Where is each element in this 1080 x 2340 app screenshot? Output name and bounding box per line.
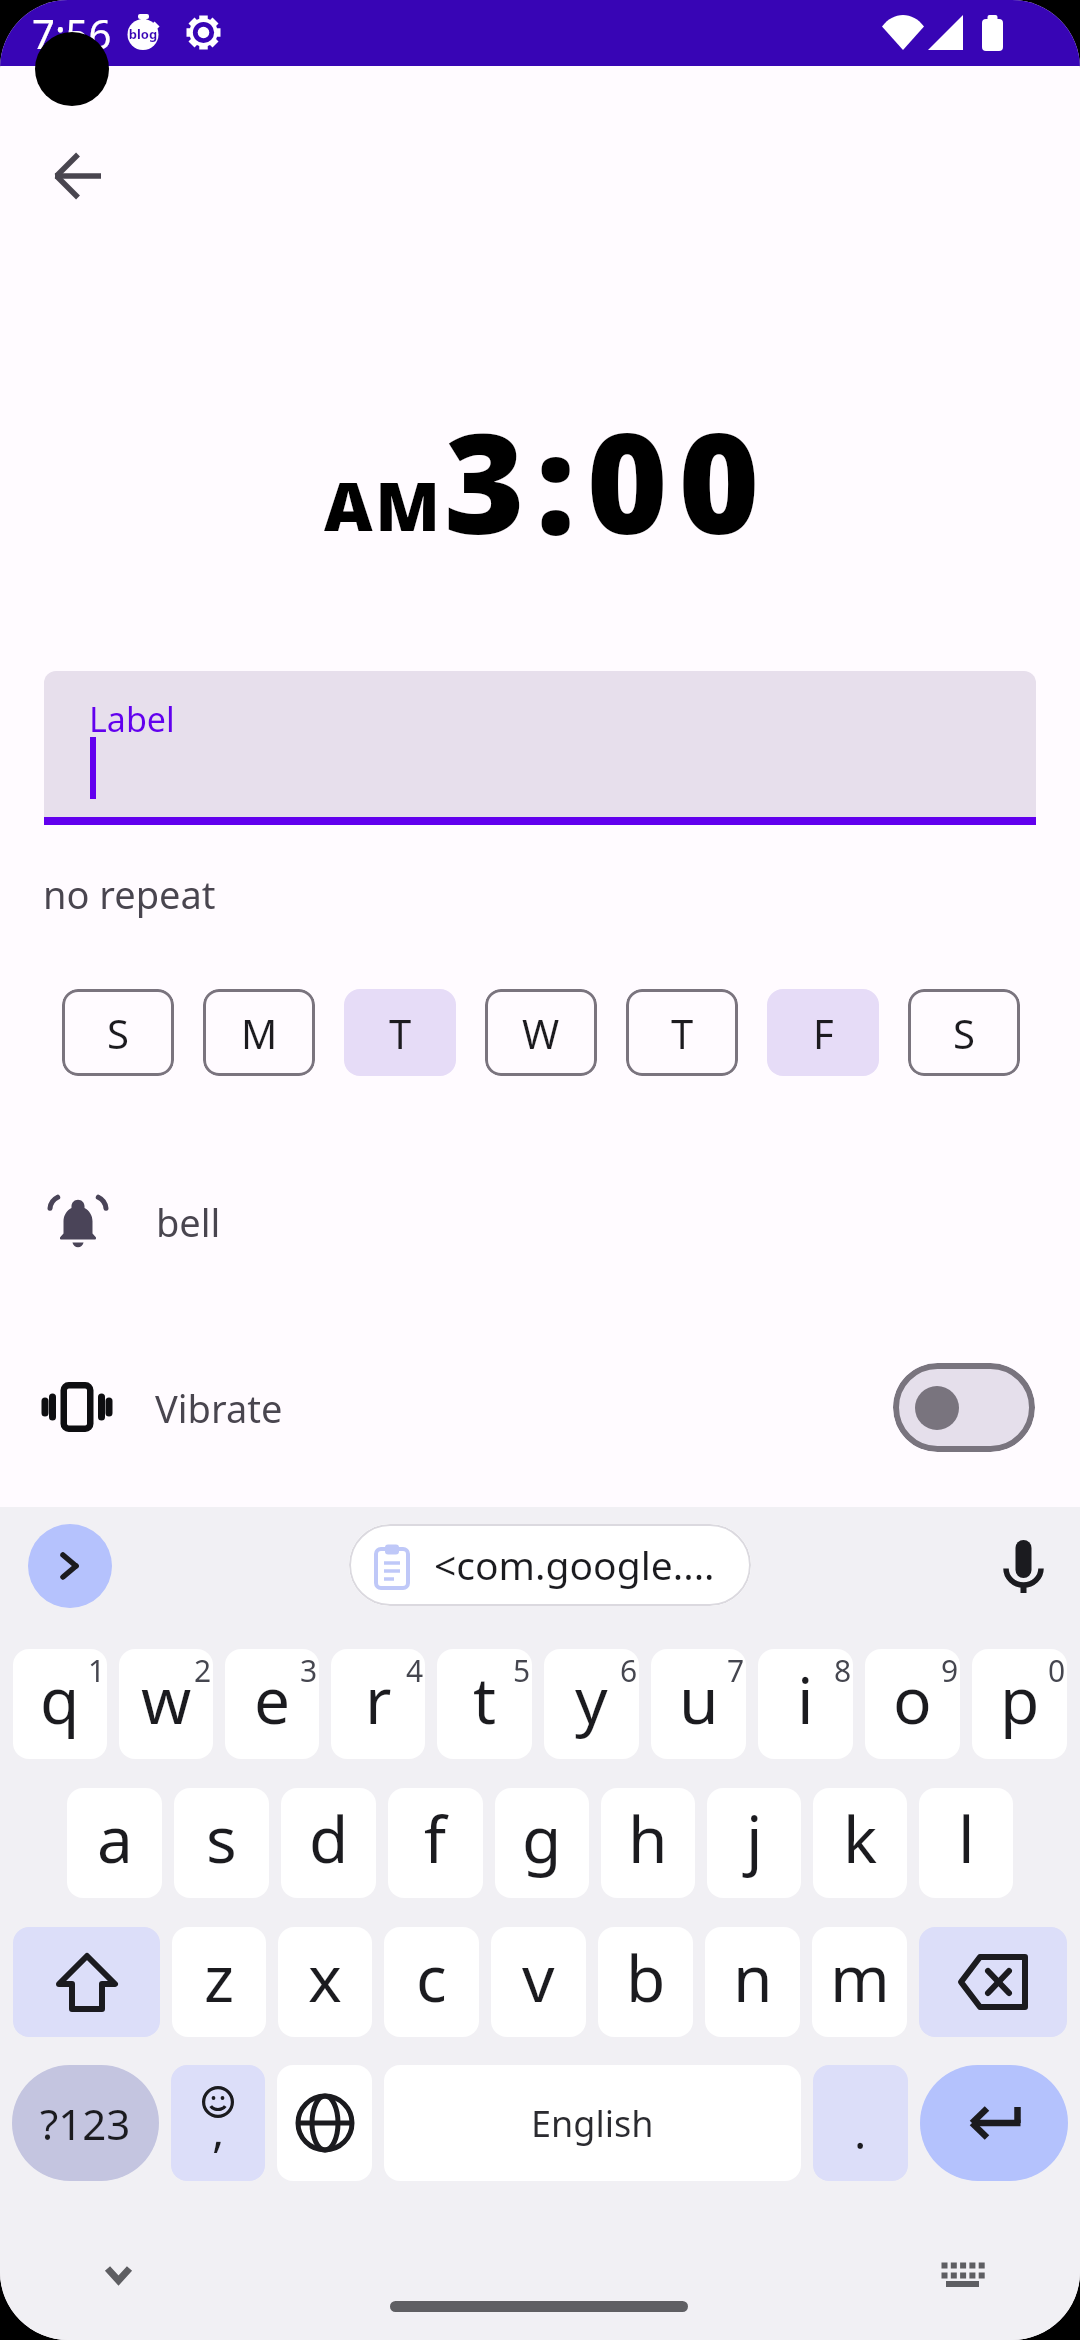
staticText: Label xyxy=(89,696,175,742)
staticText: S xyxy=(953,1006,975,1060)
staticText: t xyxy=(473,1656,497,1743)
staticText: h xyxy=(628,1795,668,1882)
staticText: 3 xyxy=(300,1650,318,1691)
staticText: c xyxy=(416,1934,447,2021)
button[interactable]: f xyxy=(388,1788,483,1898)
button[interactable]: p xyxy=(972,1649,1067,1759)
button[interactable]: Vibrate toggle xyxy=(893,1363,1035,1452)
button[interactable]: k xyxy=(813,1788,907,1898)
button[interactable]: Vibrate xyxy=(0,1347,1080,1467)
staticText: M xyxy=(241,1006,278,1060)
staticText: AM xyxy=(324,459,443,550)
staticText: W xyxy=(522,1006,560,1060)
button[interactable]: Hide keyboard xyxy=(78,2238,160,2320)
button[interactable]: r xyxy=(331,1649,425,1759)
button[interactable]: g xyxy=(495,1788,589,1898)
button[interactable]: ?123 xyxy=(12,2065,159,2181)
button[interactable]: T xyxy=(626,989,738,1076)
staticText: p xyxy=(1000,1656,1040,1743)
staticText: T xyxy=(389,1006,412,1060)
button[interactable]: <com.google.... xyxy=(349,1524,751,1606)
staticText: k xyxy=(843,1795,878,1882)
staticText: s xyxy=(206,1795,237,1882)
staticText: a xyxy=(97,1795,133,1882)
button[interactable]: y xyxy=(544,1649,639,1759)
button[interactable]: x xyxy=(278,1927,372,2037)
staticText: y xyxy=(575,1656,608,1743)
button[interactable]: m xyxy=(812,1927,907,2037)
staticText: bell xyxy=(156,1196,221,1248)
button[interactable]: bell xyxy=(0,1161,1080,1281)
staticText: m xyxy=(830,1934,890,2021)
button[interactable]: Emoji and comma xyxy=(171,2065,265,2181)
staticText: g xyxy=(522,1795,562,1882)
staticText: u xyxy=(679,1656,719,1743)
button[interactable]: Backspace xyxy=(919,1927,1067,2037)
staticText: b xyxy=(626,1934,666,2021)
button[interactable]: S xyxy=(62,989,174,1076)
staticText: j xyxy=(746,1795,763,1882)
staticText: English xyxy=(531,2099,654,2148)
button[interactable]: t xyxy=(437,1649,532,1759)
staticText: 7:56 xyxy=(32,6,112,60)
staticText: o xyxy=(893,1656,932,1743)
staticText: <com.google.... xyxy=(434,1538,715,1591)
staticText: Vibrate xyxy=(155,1382,283,1434)
staticText: 7 xyxy=(727,1650,745,1691)
staticText: S xyxy=(107,1006,129,1060)
button[interactable]: F xyxy=(767,989,879,1076)
staticText: x xyxy=(308,1934,342,2021)
button[interactable]: Shift xyxy=(13,1927,160,2037)
button[interactable]: W xyxy=(485,989,597,1076)
staticText: r xyxy=(365,1656,392,1743)
button[interactable]: l xyxy=(919,1788,1013,1898)
staticText: . xyxy=(854,2100,867,2163)
button[interactable]: Expand toolbar xyxy=(28,1524,112,1608)
staticText: e xyxy=(254,1656,291,1743)
button[interactable]: a xyxy=(67,1788,162,1898)
button[interactable]: h xyxy=(601,1788,695,1898)
button[interactable]: z xyxy=(172,1927,266,2037)
button[interactable]: Label xyxy=(44,671,1036,817)
button[interactable]: w xyxy=(119,1649,213,1759)
staticText: v xyxy=(522,1934,555,2021)
staticText: 5 xyxy=(513,1650,531,1691)
staticText: , xyxy=(212,2098,225,2161)
button[interactable]: q xyxy=(13,1649,107,1759)
staticText: 0 xyxy=(1048,1650,1066,1691)
staticText: w xyxy=(141,1656,192,1743)
staticText: 4 xyxy=(406,1650,424,1691)
button[interactable]: Switch keyboard xyxy=(921,2238,1003,2320)
button[interactable]: . xyxy=(813,2065,908,2181)
button[interactable]: S xyxy=(908,989,1020,1076)
button[interactable]: b xyxy=(598,1927,693,2037)
staticText: i xyxy=(797,1656,814,1743)
staticText: 1 xyxy=(88,1650,106,1691)
staticText: f xyxy=(424,1795,447,1882)
button[interactable]: e xyxy=(225,1649,319,1759)
staticText: n xyxy=(733,1934,773,2021)
button[interactable]: s xyxy=(174,1788,269,1898)
button[interactable]: v xyxy=(491,1927,586,2037)
button[interactable]: M xyxy=(203,989,315,1076)
staticText: 3:00 xyxy=(444,386,771,574)
button[interactable]: j xyxy=(707,1788,801,1898)
staticText: 8 xyxy=(834,1650,852,1691)
button[interactable]: o xyxy=(865,1649,960,1759)
staticText: 6 xyxy=(620,1650,638,1691)
staticText: l xyxy=(958,1795,975,1882)
button[interactable]: i xyxy=(758,1649,853,1759)
button[interactable]: n xyxy=(705,1927,800,2037)
button[interactable]: c xyxy=(384,1927,479,2037)
button[interactable]: Voice input xyxy=(983,1520,1063,1600)
button[interactable]: Back xyxy=(29,128,125,224)
button[interactable]: Enter xyxy=(920,2065,1068,2181)
button[interactable]: English xyxy=(384,2065,801,2181)
button[interactable]: Change language xyxy=(277,2065,372,2181)
staticText: z xyxy=(204,1934,235,2021)
button[interactable]: u xyxy=(651,1649,746,1759)
button[interactable]: d xyxy=(281,1788,376,1898)
staticText: T xyxy=(671,1006,694,1060)
staticText: q xyxy=(40,1656,80,1743)
button[interactable]: T xyxy=(344,989,456,1076)
